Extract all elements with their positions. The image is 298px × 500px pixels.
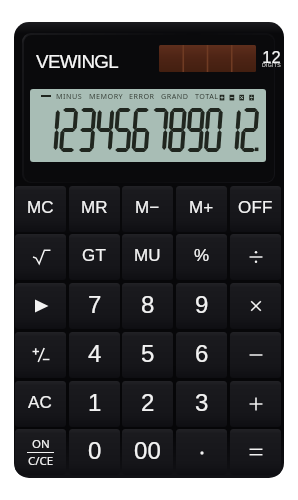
staticText: MU: [134, 246, 161, 265]
staticText: 2: [141, 389, 155, 416]
staticText: ON: [32, 436, 50, 452]
staticText: M+: [189, 198, 214, 217]
staticText: MINUS: [56, 91, 83, 101]
staticText: 8: [141, 291, 155, 318]
button[interactable]: 6: [176, 332, 227, 378]
button[interactable]: 00: [122, 429, 173, 475]
staticText: 5: [141, 340, 155, 367]
staticText: GT: [82, 246, 107, 265]
button[interactable]: ±: [15, 332, 66, 378]
other: √: [27, 243, 55, 271]
button[interactable]: 7: [69, 283, 120, 329]
staticText: 0: [88, 437, 102, 464]
staticText: GRAND: [161, 91, 189, 101]
staticText: OFF: [238, 198, 273, 217]
button[interactable]: +: [230, 381, 281, 427]
button[interactable]: =: [230, 429, 281, 475]
other: ▶: [27, 292, 55, 320]
other: ·: [188, 438, 216, 466]
other: ±: [27, 341, 55, 369]
staticText: 3: [195, 389, 209, 416]
button[interactable]: ×: [230, 283, 281, 329]
staticText: C/CE: [28, 453, 54, 469]
staticText: %: [194, 246, 210, 265]
staticText: 6: [195, 340, 209, 367]
button[interactable]: MU: [122, 234, 173, 280]
staticText: 9: [195, 291, 209, 318]
button[interactable]: 5: [122, 332, 173, 378]
staticText: 7: [88, 291, 102, 318]
button[interactable]: 0: [69, 429, 120, 475]
other: −: [242, 341, 270, 369]
button[interactable]: AC: [15, 381, 66, 427]
staticText: AC: [28, 393, 53, 412]
staticText: M−: [135, 198, 160, 217]
button[interactable]: %: [176, 234, 227, 280]
staticText: 1: [88, 389, 102, 416]
button[interactable]: −: [230, 332, 281, 378]
button[interactable]: M+: [176, 186, 227, 232]
other: ×: [242, 292, 270, 320]
staticText: 00: [134, 437, 162, 464]
button[interactable]: 4: [69, 332, 120, 378]
button[interactable]: GT: [69, 234, 120, 280]
button[interactable]: √: [15, 234, 66, 280]
button[interactable]: 2: [122, 381, 173, 427]
staticText: 12: [262, 48, 281, 66]
staticText: 4: [88, 340, 102, 367]
button[interactable]: MC: [15, 186, 66, 232]
other: ÷: [242, 243, 270, 271]
button[interactable]: 3: [176, 381, 227, 427]
button[interactable]: 8: [122, 283, 173, 329]
button[interactable]: 1: [69, 381, 120, 427]
staticText: VEWINGL: [36, 51, 119, 72]
button[interactable]: M−: [122, 186, 173, 232]
staticText: ERROR: [129, 91, 155, 101]
button[interactable]: OFF: [230, 186, 281, 232]
staticText: MEMORY: [89, 91, 124, 101]
other: =: [242, 438, 270, 466]
staticText: MR: [81, 198, 108, 217]
button[interactable]: ▶: [15, 283, 66, 329]
staticText: TOTAL: [195, 91, 219, 101]
button[interactable]: 9: [176, 283, 227, 329]
staticText: DIGITS: [262, 62, 281, 68]
staticText: MC: [27, 198, 54, 217]
button[interactable]: MR: [69, 186, 120, 232]
button[interactable]: ÷: [230, 234, 281, 280]
button[interactable]: ·: [176, 429, 227, 475]
other: +: [242, 390, 270, 418]
button[interactable]: ON: [15, 429, 66, 475]
